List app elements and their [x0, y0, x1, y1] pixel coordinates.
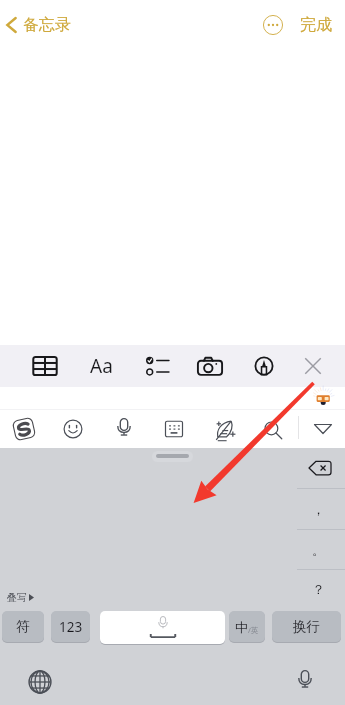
staticText: 123 — [59, 618, 83, 636]
button[interactable]: Hide keyboard — [299, 409, 345, 448]
button[interactable]: 换行 — [272, 611, 341, 642]
button[interactable]: Emoji — [49, 409, 97, 448]
staticText: ？ — [312, 581, 325, 597]
button[interactable]: Dictation — [283, 659, 327, 703]
button[interactable]: 叠写 — [5, 589, 36, 606]
staticText: 叠写 — [7, 591, 27, 604]
staticText: 备忘录 — [23, 15, 71, 35]
staticText: /英 — [248, 625, 259, 635]
button[interactable]: Search — [248, 409, 296, 448]
staticText: 符 — [16, 618, 30, 635]
button[interactable]: 123 — [51, 611, 90, 642]
button[interactable]: AI writing — [200, 409, 248, 448]
button[interactable]: 完成 — [288, 9, 345, 41]
button[interactable]: Space — [100, 611, 225, 644]
button[interactable]: Camera — [188, 345, 232, 387]
button[interactable]: Question mark — [295, 569, 345, 609]
staticText: 完成 — [300, 15, 332, 35]
button[interactable]: Checklist — [135, 345, 179, 387]
staticText: Aa — [90, 353, 113, 379]
button[interactable]: 备忘录 — [0, 9, 81, 41]
button[interactable]: Aa — [79, 345, 123, 387]
button[interactable]: Resize keyboard — [152, 451, 193, 462]
staticText: 换行 — [293, 618, 320, 635]
button[interactable]: Sogou input settings — [0, 409, 48, 448]
button[interactable]: Backspace — [295, 448, 345, 488]
button[interactable]: 符 — [2, 611, 44, 642]
button[interactable]: More options — [258, 10, 288, 40]
button[interactable]: 中 — [229, 611, 265, 642]
button[interactable]: Keyboard layout — [150, 409, 198, 448]
button[interactable]: Comma — [295, 488, 345, 529]
staticText: 。 — [312, 542, 325, 558]
staticText: ， — [312, 501, 325, 517]
button[interactable]: Voice input — [100, 409, 148, 448]
button[interactable]: Insert table — [23, 345, 67, 387]
button[interactable]: Close toolbar — [291, 345, 335, 387]
button[interactable]: Switch keyboard — [18, 660, 62, 704]
staticText: 中 — [235, 619, 248, 635]
button[interactable]: Period — [295, 529, 345, 570]
button[interactable]: Markup — [242, 345, 286, 387]
